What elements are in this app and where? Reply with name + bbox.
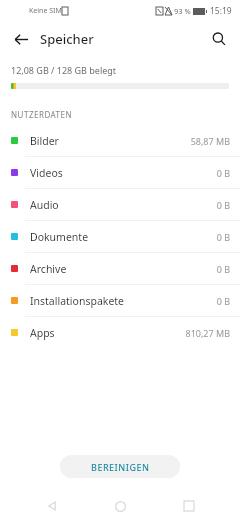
button[interactable]: Audio	[0, 189, 240, 220]
staticText: 12,08 GB / 128 GB belegt	[11, 64, 117, 76]
button[interactable]: BEREINIGEN	[60, 455, 180, 478]
staticText: Keine SIM	[29, 6, 62, 16]
staticText: Installationspakete	[30, 294, 216, 308]
button[interactable]: Zurück	[6, 24, 36, 54]
staticText: Speicher	[40, 30, 94, 48]
staticText: 0 B	[216, 167, 230, 179]
staticText: 0 B	[216, 231, 230, 243]
staticText: 810,27 MB	[185, 327, 230, 339]
staticText: BEREINIGEN	[91, 461, 150, 473]
button[interactable]: Übersicht	[172, 492, 206, 520]
button[interactable]: Apps	[0, 317, 240, 348]
button[interactable]: Zurück	[35, 492, 69, 520]
staticText: Videos	[30, 166, 216, 180]
button[interactable]: Archive	[0, 253, 240, 284]
button[interactable]: Suchen	[204, 24, 234, 54]
staticText: 0 B	[216, 199, 230, 211]
staticText: 0 B	[216, 295, 230, 307]
staticText: Bilder	[30, 134, 190, 148]
staticText: Audio	[30, 198, 216, 212]
button[interactable]: Dokumente	[0, 221, 240, 252]
button[interactable]: Installationspakete	[0, 285, 240, 316]
staticText: Apps	[30, 326, 185, 340]
staticText: Dokumente	[30, 230, 216, 244]
staticText: NUTZERDATEN	[11, 109, 73, 120]
staticText: 15:19	[210, 5, 232, 17]
button[interactable]: Videos	[0, 157, 240, 188]
staticText: Archive	[30, 262, 216, 276]
staticText: 58,87 MB	[190, 135, 230, 147]
staticText: 0 B	[216, 263, 230, 275]
button[interactable]: Bilder	[0, 125, 240, 156]
button[interactable]: Startbildschirm	[103, 492, 137, 520]
staticText: 93 %	[174, 6, 191, 16]
